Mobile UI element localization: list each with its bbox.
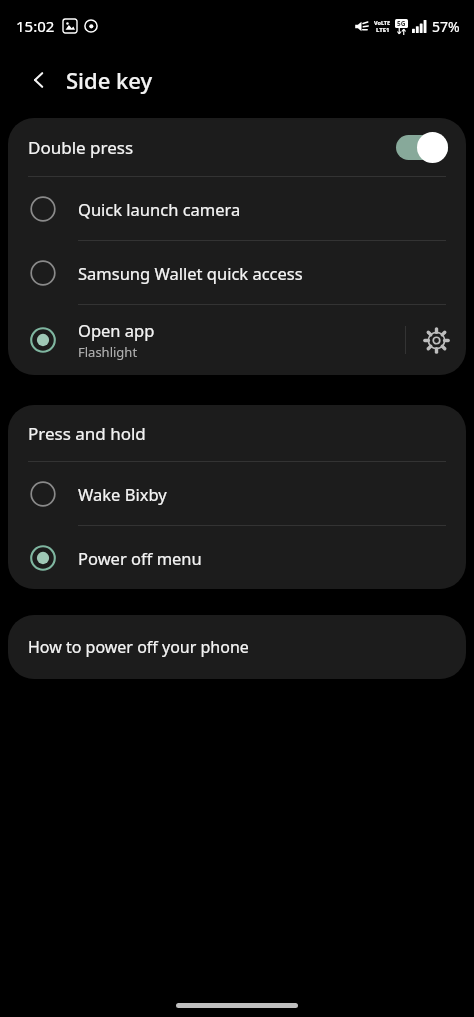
staticText: VoLTE (374, 19, 391, 26)
staticText: Quick launch camera (78, 198, 241, 220)
staticText: Side key (66, 65, 153, 95)
button[interactable]: Quick launch camera (8, 177, 466, 240)
button[interactable]: Wake Bixby (8, 462, 466, 525)
button[interactable]: App settings (406, 305, 466, 375)
button[interactable]: Double press (8, 118, 466, 176)
button[interactable]: How to power off your phone (8, 615, 466, 679)
button[interactable]: Open app (8, 305, 466, 375)
staticText: Wake Bixby (78, 483, 167, 505)
staticText: Double press (28, 136, 134, 159)
staticText: 57% (432, 17, 460, 36)
button[interactable]: Double press toggle (396, 132, 448, 163)
staticText: How to power off your phone (28, 636, 249, 658)
staticText: Samsung Wallet quick access (78, 262, 303, 284)
staticText: Flashlight (78, 343, 138, 361)
staticText: 15:02 (16, 16, 55, 36)
button[interactable]: Power off menu (8, 526, 466, 589)
button[interactable]: Samsung Wallet quick access (8, 241, 466, 304)
staticText: Power off menu (78, 547, 202, 569)
staticText: Press and hold (28, 422, 146, 445)
button[interactable]: Back (14, 55, 64, 105)
staticText: Open app (78, 319, 155, 341)
staticText: LTE1 (376, 26, 390, 34)
staticText: 5G (397, 19, 406, 28)
